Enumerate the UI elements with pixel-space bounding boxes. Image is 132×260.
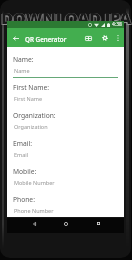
staticText: DOWNLOAD.JPA [0, 7, 132, 29]
staticText: Name [14, 67, 30, 74]
staticText: DOWNLOAD.JPA [0, 6, 132, 28]
button[interactable]: Navigate up [10, 32, 22, 44]
staticText: Mobile: [13, 167, 37, 176]
staticText: 4:38 [112, 21, 122, 28]
staticText: First Name [14, 95, 43, 102]
staticText: Organization: [13, 111, 56, 120]
button[interactable]: More options [113, 33, 123, 43]
staticText: DOWNLOAD.JPA [1, 7, 132, 29]
staticText: First Name: [13, 83, 49, 92]
button[interactable]: Home [59, 218, 73, 229]
staticText: Email: [13, 139, 32, 148]
staticText: Phone: [13, 195, 35, 204]
staticText: DOWNLOAD.JPA [0, 7, 131, 29]
button[interactable]: Settings [99, 32, 111, 44]
staticText: Organization [14, 123, 48, 130]
staticText: DOWNLOAD.JPA [0, 6, 132, 28]
staticText: Email [14, 151, 29, 158]
staticText: QR Generator [25, 35, 67, 44]
staticText: Mobile Number [14, 179, 55, 186]
staticText: Phone Number [14, 207, 54, 214]
button[interactable]: Generate QR code [82, 32, 94, 44]
staticText: Name: [13, 55, 34, 64]
button[interactable]: Recent apps [91, 218, 105, 229]
button[interactable]: Back [27, 218, 41, 229]
